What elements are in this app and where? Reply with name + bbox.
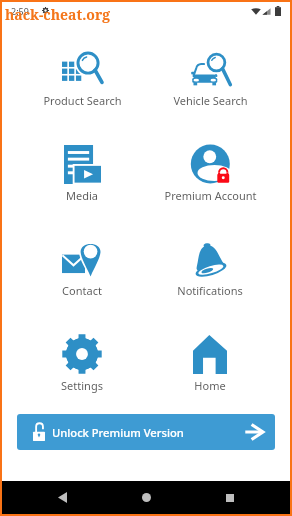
button[interactable]: Back [38, 481, 86, 514]
staticText: hack-cheat.org [5, 5, 111, 24]
button[interactable]: Contact [18, 233, 146, 328]
button[interactable]: Home [146, 328, 274, 423]
button[interactable]: Notifications [146, 233, 274, 328]
button[interactable]: Recent apps [206, 481, 254, 514]
staticText: Notifications [177, 283, 243, 298]
staticText: Settings [61, 378, 103, 393]
staticText: Premium Account [164, 188, 257, 203]
button[interactable]: Product Search [18, 43, 146, 138]
staticText: Home [194, 378, 226, 393]
staticText: Unlock Premium Version [52, 425, 184, 440]
staticText: Media [66, 188, 98, 203]
staticText: Vehicle Search [173, 93, 248, 108]
button[interactable]: Media [18, 138, 146, 233]
button[interactable]: Unlock Premium Version [17, 414, 275, 450]
button[interactable]: Home [122, 481, 170, 514]
staticText: Product Search [43, 93, 122, 108]
staticText: Contact [62, 283, 102, 298]
button[interactable]: Vehicle Search [146, 43, 274, 138]
button[interactable]: Settings [18, 328, 146, 423]
staticText: 2:59 [11, 5, 29, 17]
button[interactable]: Premium Account [146, 138, 274, 233]
